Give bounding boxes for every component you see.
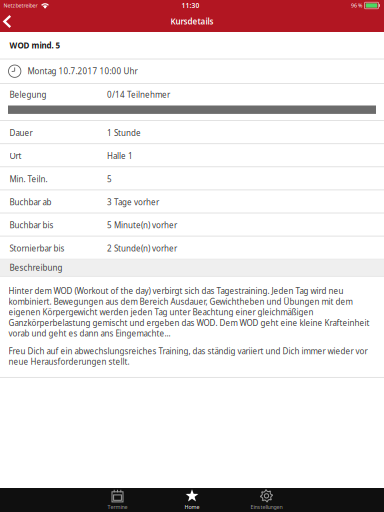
staticText: Dauer	[9, 127, 32, 138]
staticText: Stornierbar bis	[9, 243, 64, 254]
button[interactable]: Einstellungen	[229, 488, 304, 512]
staticText: Belegung	[9, 89, 46, 100]
staticText: Einstellungen	[250, 503, 282, 510]
button[interactable]: Home	[155, 488, 229, 512]
staticText: Min. Teiln.	[9, 174, 47, 184]
staticText: 96 %	[351, 2, 362, 9]
staticText: Ort	[9, 151, 21, 161]
staticText: 3 Tage vorher	[107, 197, 159, 207]
staticText: WOD mind. 5	[9, 40, 60, 51]
staticText: 5	[107, 174, 112, 184]
staticText: Hinter dem WOD (Workout of the day) verb…	[8, 286, 369, 339]
staticText: Kursdetails	[170, 16, 213, 27]
staticText: Freu Dich auf ein abwechslungsreiches Tr…	[8, 346, 367, 367]
staticText: Buchbar ab	[9, 197, 51, 207]
staticText: Beschreibung	[9, 262, 62, 273]
staticText: Halle 1	[107, 151, 133, 161]
staticText: 2 Stunde(n) vorher	[107, 243, 177, 254]
button[interactable]: Termine	[80, 488, 155, 512]
staticText: Buchbar bis	[9, 220, 53, 230]
staticText: 0/14 Teilnehmer	[107, 89, 170, 100]
staticText: 1 Stunde	[107, 127, 141, 138]
button[interactable]: Back	[0, 11, 23, 32]
staticText: Home	[184, 503, 199, 510]
staticText: Montag 10.7.2017 10:00 Uhr	[27, 66, 137, 76]
staticText: Termine	[107, 503, 127, 510]
staticText: 11:30	[181, 1, 199, 10]
staticText: Netzbetreiber	[4, 2, 38, 9]
staticText: 5 Minute(n) vorher	[107, 220, 177, 230]
